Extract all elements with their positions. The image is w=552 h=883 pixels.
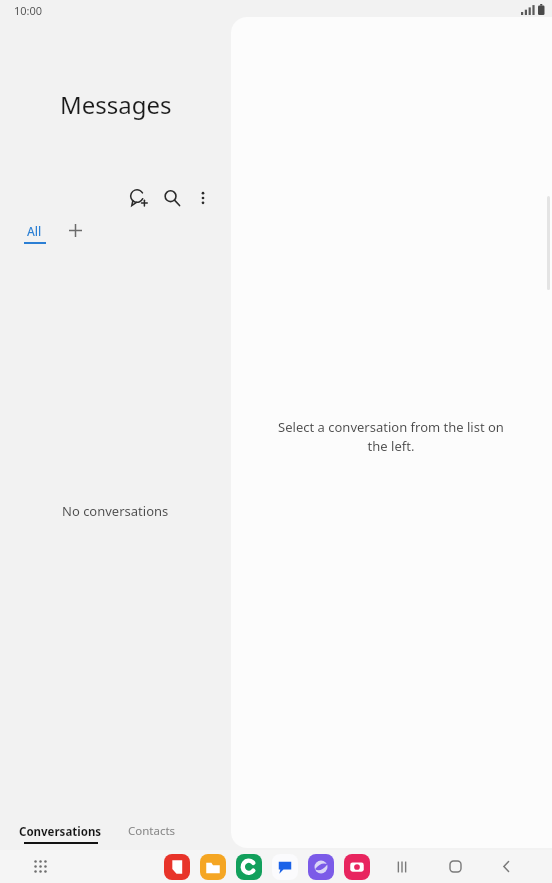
button[interactable]: Add category [63,218,87,242]
button[interactable]: More options [189,184,217,212]
staticText: Messages [60,88,172,121]
button[interactable]: Internet [308,854,334,880]
button[interactable]: All [22,223,47,244]
button[interactable]: Messages [272,854,298,880]
button[interactable]: Search [157,183,187,213]
button[interactable]: Conversations [19,824,102,844]
staticText: Contacts [128,823,176,839]
button[interactable]: Contacts [128,823,176,839]
button[interactable]: My Files [200,854,226,880]
staticText: All [27,223,42,239]
button[interactable]: Back [490,854,522,879]
button[interactable]: Home [439,854,471,879]
staticText: Conversations [19,824,102,840]
staticText: Select a conversation from the list on t… [267,418,515,455]
button[interactable]: Apps [28,854,53,879]
button[interactable]: New conversation [124,183,154,213]
button[interactable]: Recents [386,854,418,879]
staticText: 10:00 [14,3,43,18]
button[interactable]: Samsung Notes [164,854,190,880]
button[interactable]: Phone [236,854,262,880]
staticText: No conversations [62,502,169,520]
button[interactable]: Camera [344,854,370,880]
